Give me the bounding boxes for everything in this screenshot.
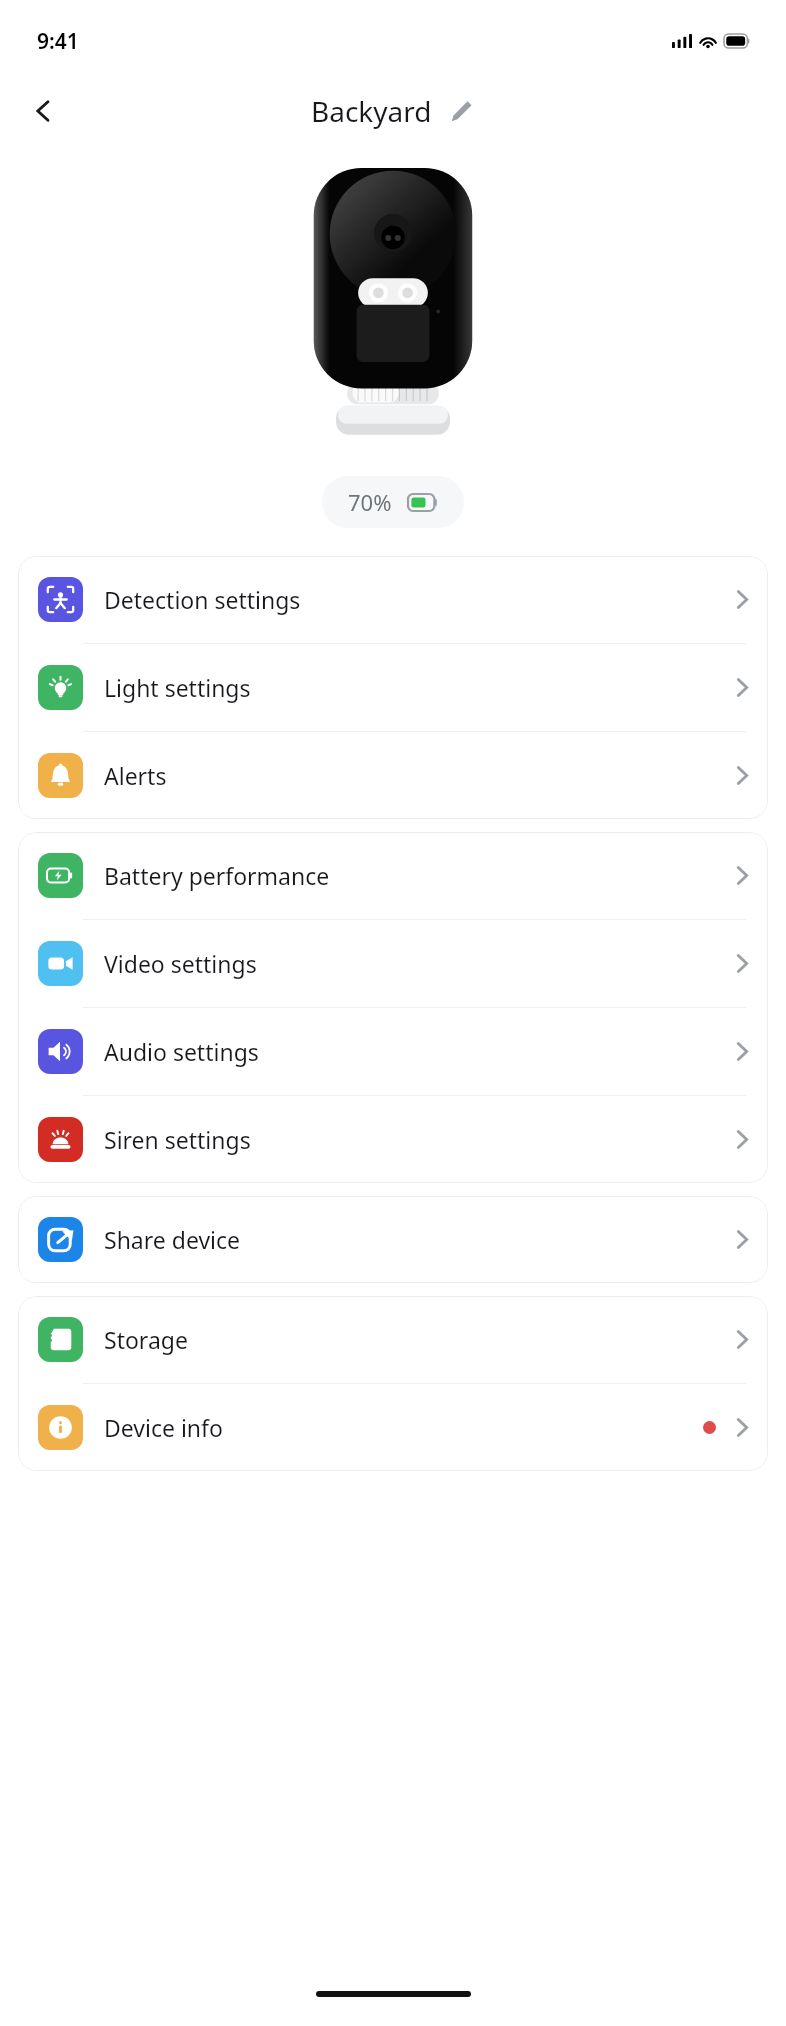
staticText: Share device	[104, 1224, 241, 1255]
staticText: Backyard	[311, 92, 432, 130]
staticText: Detection settings	[104, 584, 301, 615]
staticText: 9:41	[37, 27, 79, 56]
button[interactable]: Detection settings	[18, 556, 768, 643]
button[interactable]: 70%	[322, 476, 464, 528]
staticText: Video settings	[104, 948, 257, 979]
staticText: Audio settings	[104, 1036, 259, 1067]
staticText: Siren settings	[104, 1124, 251, 1155]
button[interactable]: Rename	[446, 96, 476, 126]
staticText: 70%	[348, 487, 392, 517]
staticText: Storage	[104, 1324, 188, 1355]
button[interactable]: Share device	[18, 1196, 768, 1283]
button[interactable]: Audio settings	[18, 1008, 768, 1095]
button[interactable]: Device info	[18, 1384, 768, 1471]
staticText: Device info	[104, 1412, 223, 1443]
button[interactable]: Light settings	[18, 644, 768, 731]
button[interactable]: Siren settings	[18, 1096, 768, 1183]
staticText: Light settings	[104, 672, 251, 703]
button[interactable]: Alerts	[18, 732, 768, 819]
button[interactable]: Back	[18, 85, 70, 137]
staticText: Battery performance	[104, 860, 330, 891]
staticText: Alerts	[104, 760, 167, 791]
button[interactable]: Video settings	[18, 920, 768, 1007]
button[interactable]: Storage	[18, 1296, 768, 1383]
button[interactable]: Battery performance	[18, 832, 768, 919]
